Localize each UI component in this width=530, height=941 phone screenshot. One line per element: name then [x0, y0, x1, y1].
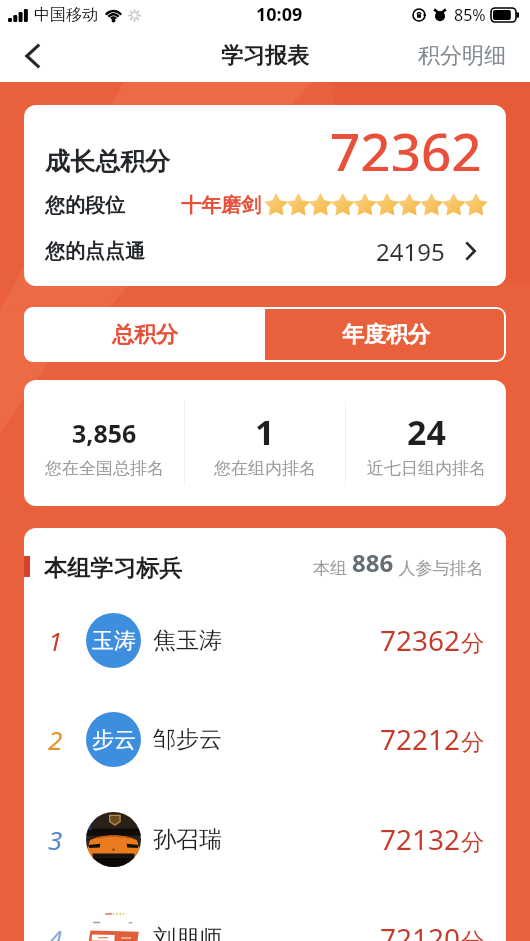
staticText: 24195: [376, 235, 445, 268]
staticText: 本组学习标兵: [44, 554, 182, 583]
staticText: 学习报表: [221, 42, 309, 70]
staticText: 刘朋师: [153, 924, 222, 941]
staticText: 焦玉涛: [153, 626, 222, 655]
button[interactable]: 2: [24, 689, 506, 789]
staticText: 72212: [380, 720, 461, 758]
staticText: 人参与排名: [394, 556, 484, 579]
staticText: 1: [48, 623, 63, 658]
staticText: 分: [461, 728, 484, 757]
staticText: 72132: [380, 820, 461, 858]
staticText: 10:09: [256, 2, 303, 27]
staticText: 24: [407, 409, 446, 455]
staticText: 年度积分: [342, 321, 430, 349]
staticText: 中国移动: [34, 5, 98, 25]
staticText: 85%: [454, 4, 486, 26]
staticText: 您的点点通: [45, 239, 145, 264]
staticText: 3: [48, 822, 63, 857]
staticText: 本组: [313, 556, 352, 579]
staticText: 孙召瑞: [153, 825, 222, 854]
staticText: 步云: [92, 726, 136, 754]
staticText: 1: [255, 409, 275, 455]
staticText: 邹步云: [153, 725, 222, 754]
staticText: 近七日组内排名: [367, 458, 486, 479]
staticText: 4: [48, 921, 63, 941]
staticText: 积分明细: [418, 42, 506, 70]
button[interactable]: 您的点点通: [24, 233, 506, 269]
staticText: 分: [461, 828, 484, 857]
staticText: 3,856: [72, 416, 137, 450]
staticText: 成长总积分: [45, 146, 170, 177]
staticText: 2: [48, 722, 63, 757]
button[interactable]: 1: [24, 590, 506, 690]
button[interactable]: 年度积分: [265, 307, 506, 362]
staticText: 72362: [330, 115, 482, 171]
button[interactable]: 3: [24, 789, 506, 889]
staticText: 您的段位: [45, 193, 125, 218]
button[interactable]: 4: [24, 888, 506, 941]
staticText: 886: [352, 546, 394, 579]
button[interactable]: 积分明细: [400, 32, 530, 80]
staticText: 分: [461, 927, 484, 941]
staticText: 72120: [380, 919, 461, 941]
staticText: 您在全国总排名: [45, 458, 164, 479]
staticText: 您在组内排名: [214, 458, 316, 479]
staticText: 玉涛: [92, 627, 136, 655]
staticText: 总积分: [112, 321, 178, 349]
staticText: 十年磨剑: [181, 193, 261, 218]
button[interactable]: 返回: [10, 33, 56, 79]
button[interactable]: 总积分: [24, 307, 265, 362]
staticText: 分: [461, 629, 484, 658]
staticText: 72362: [380, 621, 461, 659]
